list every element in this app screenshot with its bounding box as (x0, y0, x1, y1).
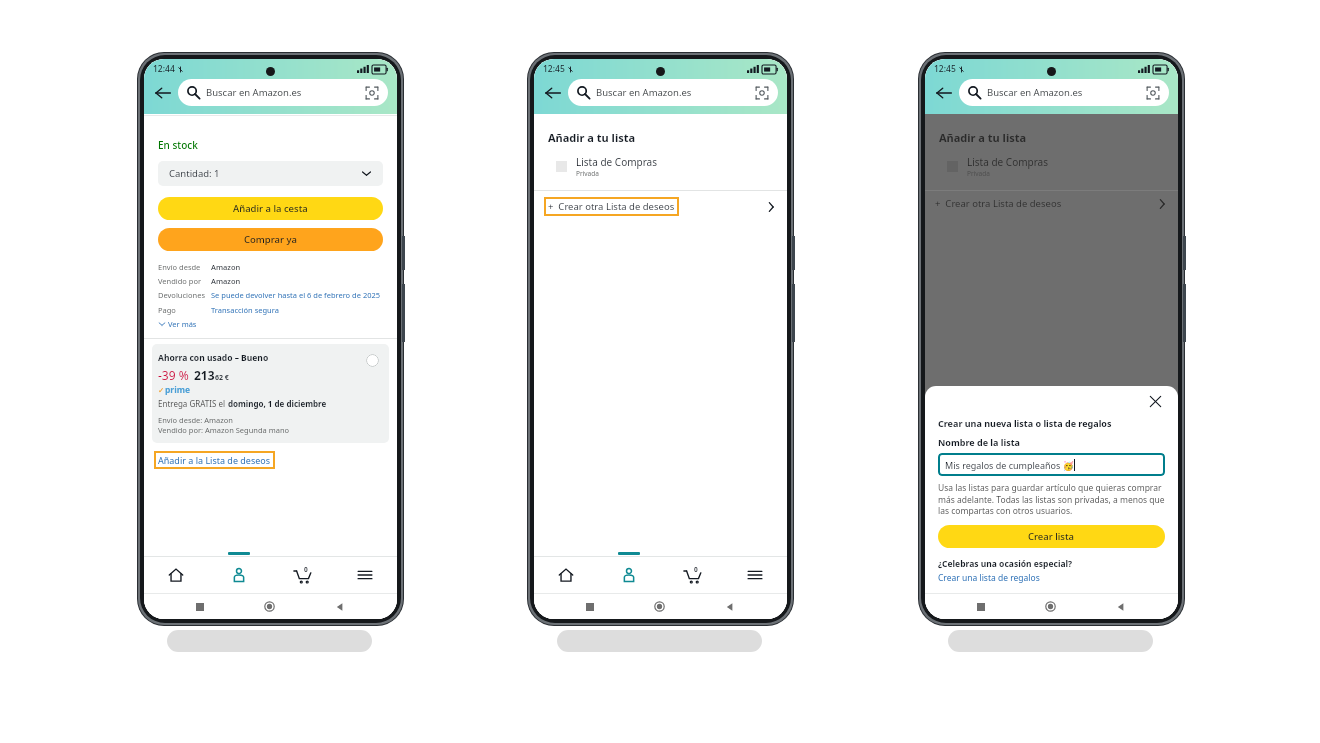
staticText: Buscar en Amazon.es (987, 86, 1083, 99)
staticText: Buscar en Amazon.es (596, 86, 692, 99)
button[interactable]: Cantidad: 1 (158, 161, 383, 186)
button[interactable]: + Crear otra Lista de deseos (925, 191, 1178, 216)
button[interactable]: Menu (733, 557, 777, 593)
staticText: Ver más (168, 319, 197, 329)
staticText: Envío desde: Amazon (158, 415, 233, 425)
staticText: Privada (576, 169, 599, 178)
staticText: Lista de Compras (576, 155, 658, 169)
button[interactable]: Mis regalos de cumpleaños 🥳 (938, 453, 1165, 476)
staticText: Crear una nueva lista o lista de regalos (938, 417, 1112, 429)
button[interactable]: Añadir a la cesta (158, 197, 383, 220)
button[interactable]: Añadir a la Lista de deseos (158, 454, 271, 466)
staticText: + Crear otra Lista de deseos (548, 200, 675, 213)
button[interactable]: Select used offer (366, 354, 379, 367)
button[interactable]: Cart (280, 557, 324, 593)
staticText: 62 € (215, 373, 229, 383)
button[interactable]: Menu (343, 557, 387, 593)
staticText: Vendido por: Amazon Segunda mano (158, 425, 290, 435)
button[interactable]: Buscar en Amazon.es (959, 79, 1169, 106)
staticText: Crear lista (1028, 530, 1075, 543)
staticText: Privada (967, 169, 990, 178)
button[interactable]: Buscar en Amazon.es (178, 79, 388, 106)
button[interactable]: Ahorra con usado – Bueno (152, 344, 389, 443)
button[interactable]: Crear lista (938, 525, 1165, 548)
staticText: Amazon (211, 262, 241, 272)
button[interactable]: Crear una lista de regalos (938, 572, 1040, 584)
button[interactable]: Home (544, 557, 588, 593)
staticText: Añadir a tu lista (548, 130, 636, 145)
button[interactable]: Account (217, 557, 261, 593)
staticText: ✓ (158, 386, 165, 395)
staticText: 0 (304, 565, 308, 574)
staticText: 12:45 (543, 63, 565, 75)
staticText: 0 (694, 565, 698, 574)
button[interactable]: Ver más (158, 319, 197, 329)
staticText: Pago (158, 305, 211, 315)
button[interactable]: Lista de Compras (925, 152, 1178, 184)
button[interactable]: Home (154, 557, 198, 593)
button[interactable]: + Crear otra Lista de deseos (534, 191, 787, 222)
staticText: Transacción segura (211, 305, 279, 315)
staticText: Lista de Compras (967, 155, 1049, 169)
staticText: Se puede devolver hasta el 6 de febrero … (211, 290, 381, 300)
button[interactable]: Buscar en Amazon.es (568, 79, 778, 106)
staticText: Comprar ya (244, 233, 297, 246)
staticText: Amazon (211, 276, 241, 286)
staticText: 12:44 (153, 63, 175, 75)
staticText: Vendido por (158, 276, 211, 286)
staticText: Entrega GRATIS el (158, 398, 228, 409)
staticText: prime (165, 384, 191, 396)
button[interactable]: Comprar ya (158, 228, 383, 251)
button[interactable]: Close (1145, 391, 1165, 411)
button[interactable]: Back (933, 82, 955, 104)
button[interactable]: Lista de Compras (534, 152, 787, 184)
staticText: Devoluciones (158, 290, 211, 300)
staticText: domingo, 1 de diciembre (228, 398, 327, 409)
staticText: Nombre de la lista (938, 436, 1020, 448)
button[interactable]: Cart (670, 557, 714, 593)
staticText: Añadir a tu lista (939, 130, 1027, 145)
staticText: 213 (194, 367, 215, 383)
staticText: Usa las listas para guardar artículo que… (938, 482, 1165, 516)
staticText: -39 % (158, 367, 189, 383)
staticText: Ahorra con usado – Bueno (158, 352, 269, 364)
staticText: ¿Celebras una ocasión especial? (938, 558, 1073, 570)
staticText: Buscar en Amazon.es (206, 86, 302, 99)
button[interactable]: Back (152, 82, 174, 104)
staticText: En stock (158, 138, 198, 152)
button[interactable]: Back (542, 82, 564, 104)
staticText: Añadir a la cesta (233, 202, 308, 215)
staticText: Envío desde (158, 262, 211, 272)
staticText: + Crear otra Lista de deseos (935, 197, 1062, 210)
staticText: 12:45 (934, 63, 956, 75)
staticText: Cantidad: 1 (169, 167, 220, 180)
button[interactable]: Account (607, 557, 651, 593)
staticText: Mis regalos de cumpleaños 🥳 (945, 459, 1074, 471)
